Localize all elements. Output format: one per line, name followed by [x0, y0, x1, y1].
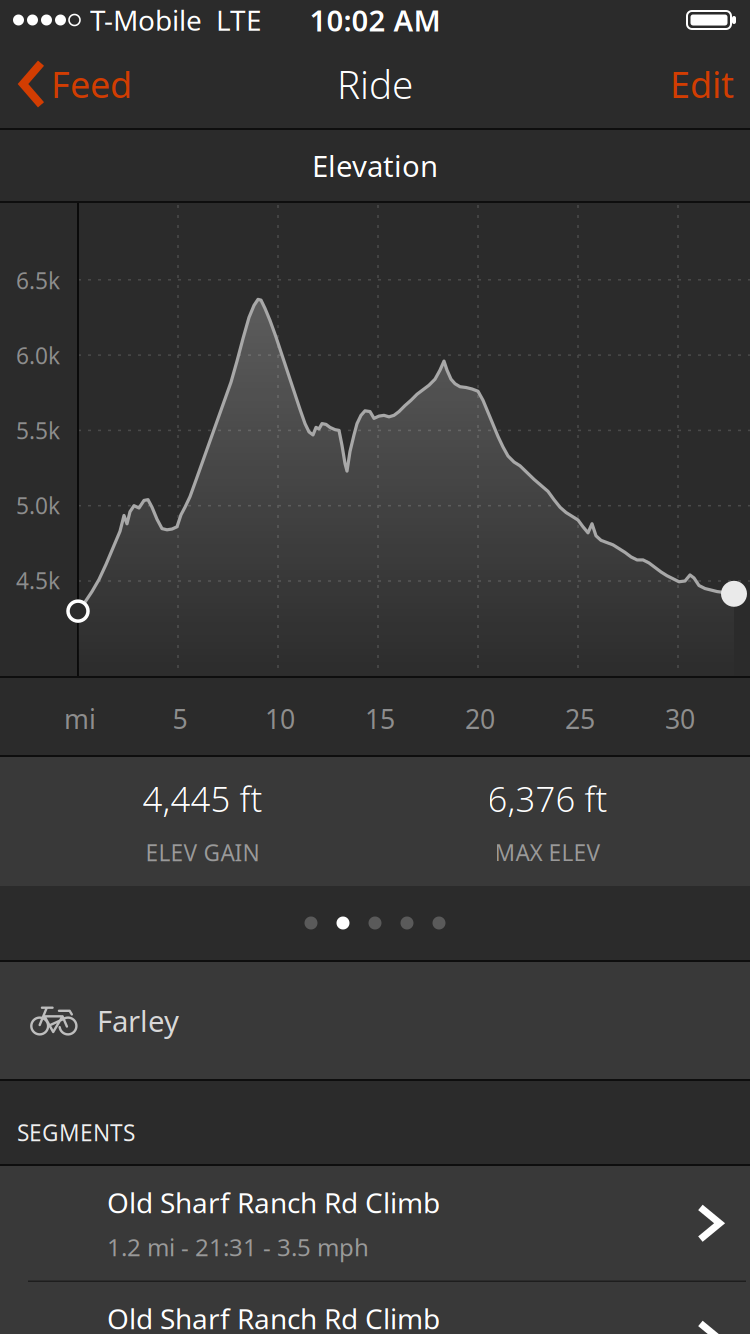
button[interactable]: Farley — [0, 962, 750, 1079]
staticText: Farley — [97, 1001, 179, 1040]
staticText: MAX ELEV — [494, 837, 600, 868]
staticText: 6,376 ft — [487, 775, 607, 821]
staticText: LTE — [216, 1, 262, 39]
staticText: 15 — [365, 701, 395, 736]
staticText: 4,445 ft — [142, 775, 262, 821]
staticText: 4.5k — [16, 565, 60, 595]
staticText: 5.0k — [16, 490, 60, 520]
staticText: 1.2 mi - 21:31 - 3.5 mph — [107, 1231, 369, 1263]
staticText: 6.5k — [16, 265, 60, 295]
staticText: 5 — [172, 701, 187, 736]
staticText: Feed — [51, 60, 132, 108]
staticText: 10:02 AM — [309, 0, 440, 39]
staticText: 20 — [465, 701, 495, 736]
button[interactable]: Old Sharf Ranch Rd Climb — [0, 1282, 750, 1334]
button[interactable]: Feed — [0, 40, 142, 128]
staticText: Old Sharf Ranch Rd Climb — [107, 1300, 440, 1334]
staticText: Edit — [670, 60, 734, 108]
staticText: 30 — [665, 701, 695, 736]
staticText: T-Mobile — [90, 1, 202, 39]
staticText: Elevation — [312, 146, 438, 185]
staticText: mi — [64, 701, 96, 736]
button[interactable]: Old Sharf Ranch Rd Climb — [0, 1166, 750, 1282]
staticText: Old Sharf Ranch Rd Climb — [107, 1184, 440, 1221]
staticText: 10 — [265, 701, 295, 736]
staticText: Ride — [337, 58, 413, 110]
staticText: 6.0k — [16, 340, 60, 370]
staticText: 25 — [565, 701, 595, 736]
button[interactable]: Edit — [654, 40, 750, 128]
staticText: 5.5k — [16, 415, 60, 445]
staticText: ELEV GAIN — [145, 837, 259, 868]
staticText: SEGMENTS — [17, 1117, 135, 1147]
